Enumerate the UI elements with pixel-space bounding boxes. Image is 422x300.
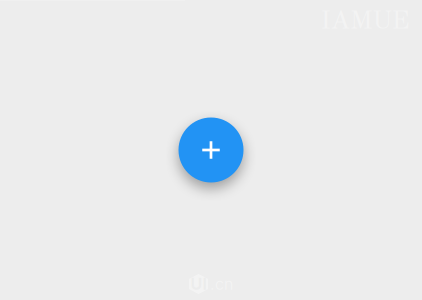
button[interactable]: Add: [178, 117, 243, 182]
staticText: UI: [190, 274, 206, 294]
